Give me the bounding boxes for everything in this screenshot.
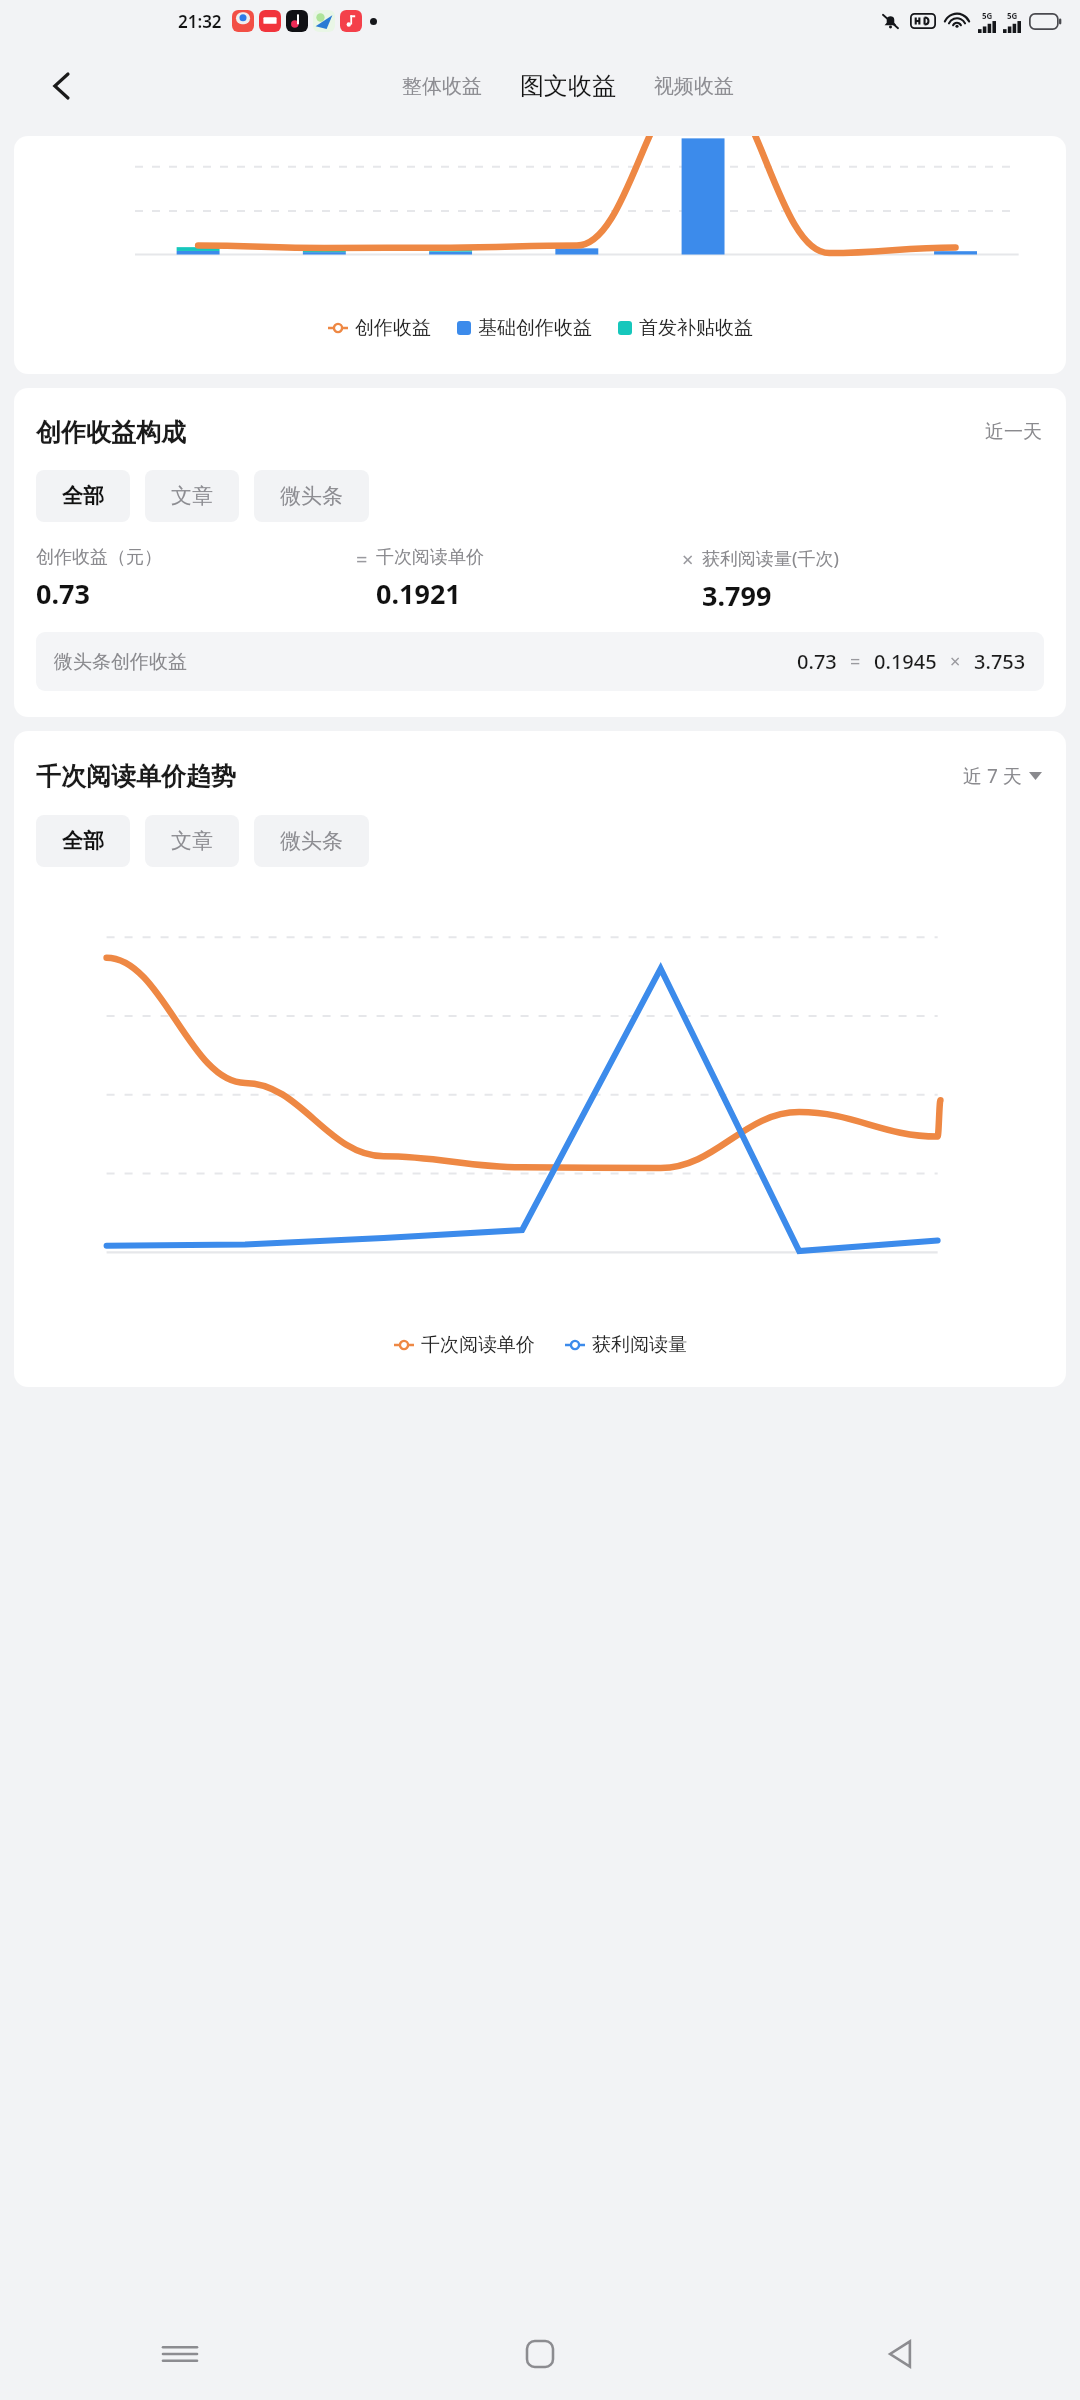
staticText: 0.73 [797,648,837,675]
staticText: × [682,546,694,573]
button[interactable]: 微头条 [254,815,369,867]
staticText: 0.1921 [376,575,461,612]
staticText: 3.753 [974,648,1026,675]
staticText: = [850,649,861,674]
staticText: 全部 [62,828,104,854]
staticText: 近 7 天 [963,763,1022,789]
staticText: × [950,649,961,674]
staticText: 千次阅读单价 [376,546,484,569]
button[interactable]: 文章 [145,470,239,522]
button[interactable]: 基础创作收益 [457,316,592,340]
staticText: 创作收益构成 [36,417,186,448]
button[interactable]: 首发补贴收益 [618,316,753,340]
button[interactable]: 整体收益 [398,68,486,105]
staticText: 文章 [171,828,213,854]
button[interactable]: 文章 [145,815,239,867]
button[interactable]: Recent apps [0,2308,360,2400]
button[interactable]: 近 7 天 [961,759,1044,793]
button[interactable]: Home [360,2308,720,2400]
button[interactable]: 创作收益 [328,316,431,340]
staticText: 21:32 [178,10,222,33]
button[interactable]: Back [720,2308,1080,2400]
button[interactable]: 千次阅读单价 [394,1333,535,1357]
staticText: 0.73 [36,575,90,612]
button[interactable]: 全部 [36,470,130,522]
button[interactable]: 微头条 [254,470,369,522]
staticText: 微头条 [280,828,343,854]
staticText: 创作收益（元） [36,546,162,569]
staticText: 文章 [171,483,213,509]
staticText: 微头条创作收益 [54,650,187,674]
staticText: 整体收益 [402,74,482,99]
staticText: 千次阅读单价 [421,1333,535,1357]
staticText: 首发补贴收益 [639,316,753,340]
staticText: 基础创作收益 [478,316,592,340]
button[interactable]: 获利阅读量 [565,1333,687,1357]
staticText: 近一天 [985,420,1042,444]
staticText: 5G [982,10,993,21]
button[interactable]: 图文收益 [516,65,620,107]
button[interactable]: 全部 [36,815,130,867]
staticText: 获利阅读量(千次) [702,546,839,571]
staticText: 获利阅读量 [592,1333,687,1357]
button[interactable]: 近一天 [983,416,1044,448]
staticText: 全部 [62,483,104,509]
staticText: 5G [1007,10,1018,21]
staticText: 3.799 [702,577,772,614]
button[interactable]: Back [30,54,94,118]
staticText: = [356,546,368,573]
staticText: 微头条 [280,483,343,509]
staticText: 图文收益 [520,71,616,101]
staticText: 创作收益 [355,316,431,340]
button[interactable]: 微头条创作收益 [36,632,1044,691]
staticText: 视频收益 [654,74,734,99]
staticText: 千次阅读单价趋势 [36,761,236,792]
staticText: 0.1945 [874,648,937,675]
button[interactable]: 视频收益 [650,68,738,105]
